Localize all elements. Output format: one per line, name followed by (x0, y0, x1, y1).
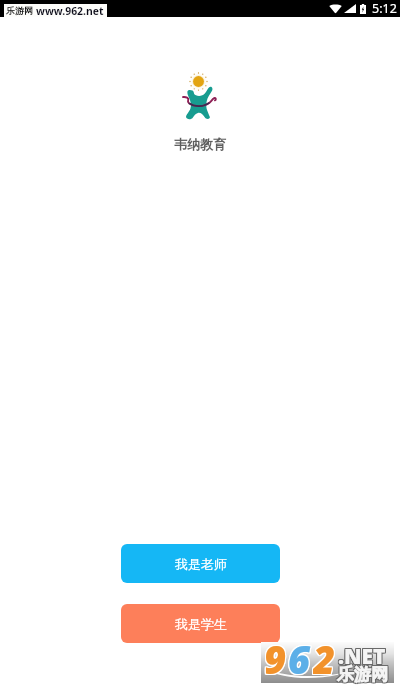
staticText: 6 (289, 634, 312, 675)
staticText: 9 (265, 633, 288, 674)
staticText: .NET (339, 642, 387, 671)
staticText: 乐游网 (337, 665, 388, 686)
button[interactable]: 我是老师 (121, 544, 280, 583)
staticText: 6 (287, 634, 310, 675)
staticText: .NET (338, 643, 386, 672)
staticText: 5:12 (372, 0, 397, 17)
staticText: .NET (337, 641, 385, 670)
staticText: 6 (287, 632, 310, 673)
staticText: www.962.net (36, 4, 104, 17)
staticText: 2 (314, 632, 337, 673)
staticText: 乐游网 (338, 663, 389, 684)
staticText: 乐游网 (337, 663, 388, 684)
staticText: 韦纳教育 (174, 136, 226, 152)
staticText: 2 (313, 632, 336, 673)
staticText: 9 (263, 633, 286, 674)
staticText: 我是学生 (175, 616, 227, 632)
staticText: 9 (264, 632, 287, 673)
staticText: 乐游网 (6, 5, 33, 16)
staticText: 2 (312, 634, 335, 675)
staticText: 9 (265, 634, 288, 675)
staticText: 6 (287, 633, 310, 674)
staticText: .NET (337, 642, 385, 671)
staticText: 9 (265, 632, 288, 673)
staticText: 乐游网 (338, 665, 389, 686)
staticText: 2 (313, 633, 336, 674)
staticText: 我是老师 (175, 556, 227, 572)
staticText: 2 (313, 634, 336, 675)
staticText: 2 (312, 632, 335, 673)
staticText: 6 (288, 632, 311, 673)
staticText: 乐游网 (338, 664, 389, 685)
other: Mobile signal (344, 4, 356, 13)
staticText: .NET (339, 643, 387, 672)
staticText: .NET (339, 641, 387, 670)
staticText: .NET (338, 641, 386, 670)
staticText: 9 (264, 633, 287, 674)
button[interactable]: 我是学生 (121, 604, 280, 643)
other: Wi-Fi signal (329, 4, 342, 13)
staticText: 6 (288, 633, 311, 674)
staticText: 6 (289, 633, 312, 674)
staticText: 6 (288, 634, 311, 675)
other: Battery charging (360, 4, 366, 14)
staticText: 乐游网 (336, 665, 387, 686)
staticText: 2 (312, 633, 335, 674)
staticText: 乐游网 (337, 664, 388, 685)
staticText: .NET (338, 642, 386, 671)
staticText: .NET (337, 643, 385, 672)
staticText: 乐游网 (336, 664, 387, 685)
staticText: 2 (314, 634, 337, 675)
staticText: 9 (264, 634, 287, 675)
staticText: 乐游网 (336, 663, 387, 684)
staticText: 9 (263, 632, 286, 673)
staticText: 6 (289, 632, 312, 673)
staticText: 9 (263, 634, 286, 675)
staticText: 2 (314, 633, 337, 674)
